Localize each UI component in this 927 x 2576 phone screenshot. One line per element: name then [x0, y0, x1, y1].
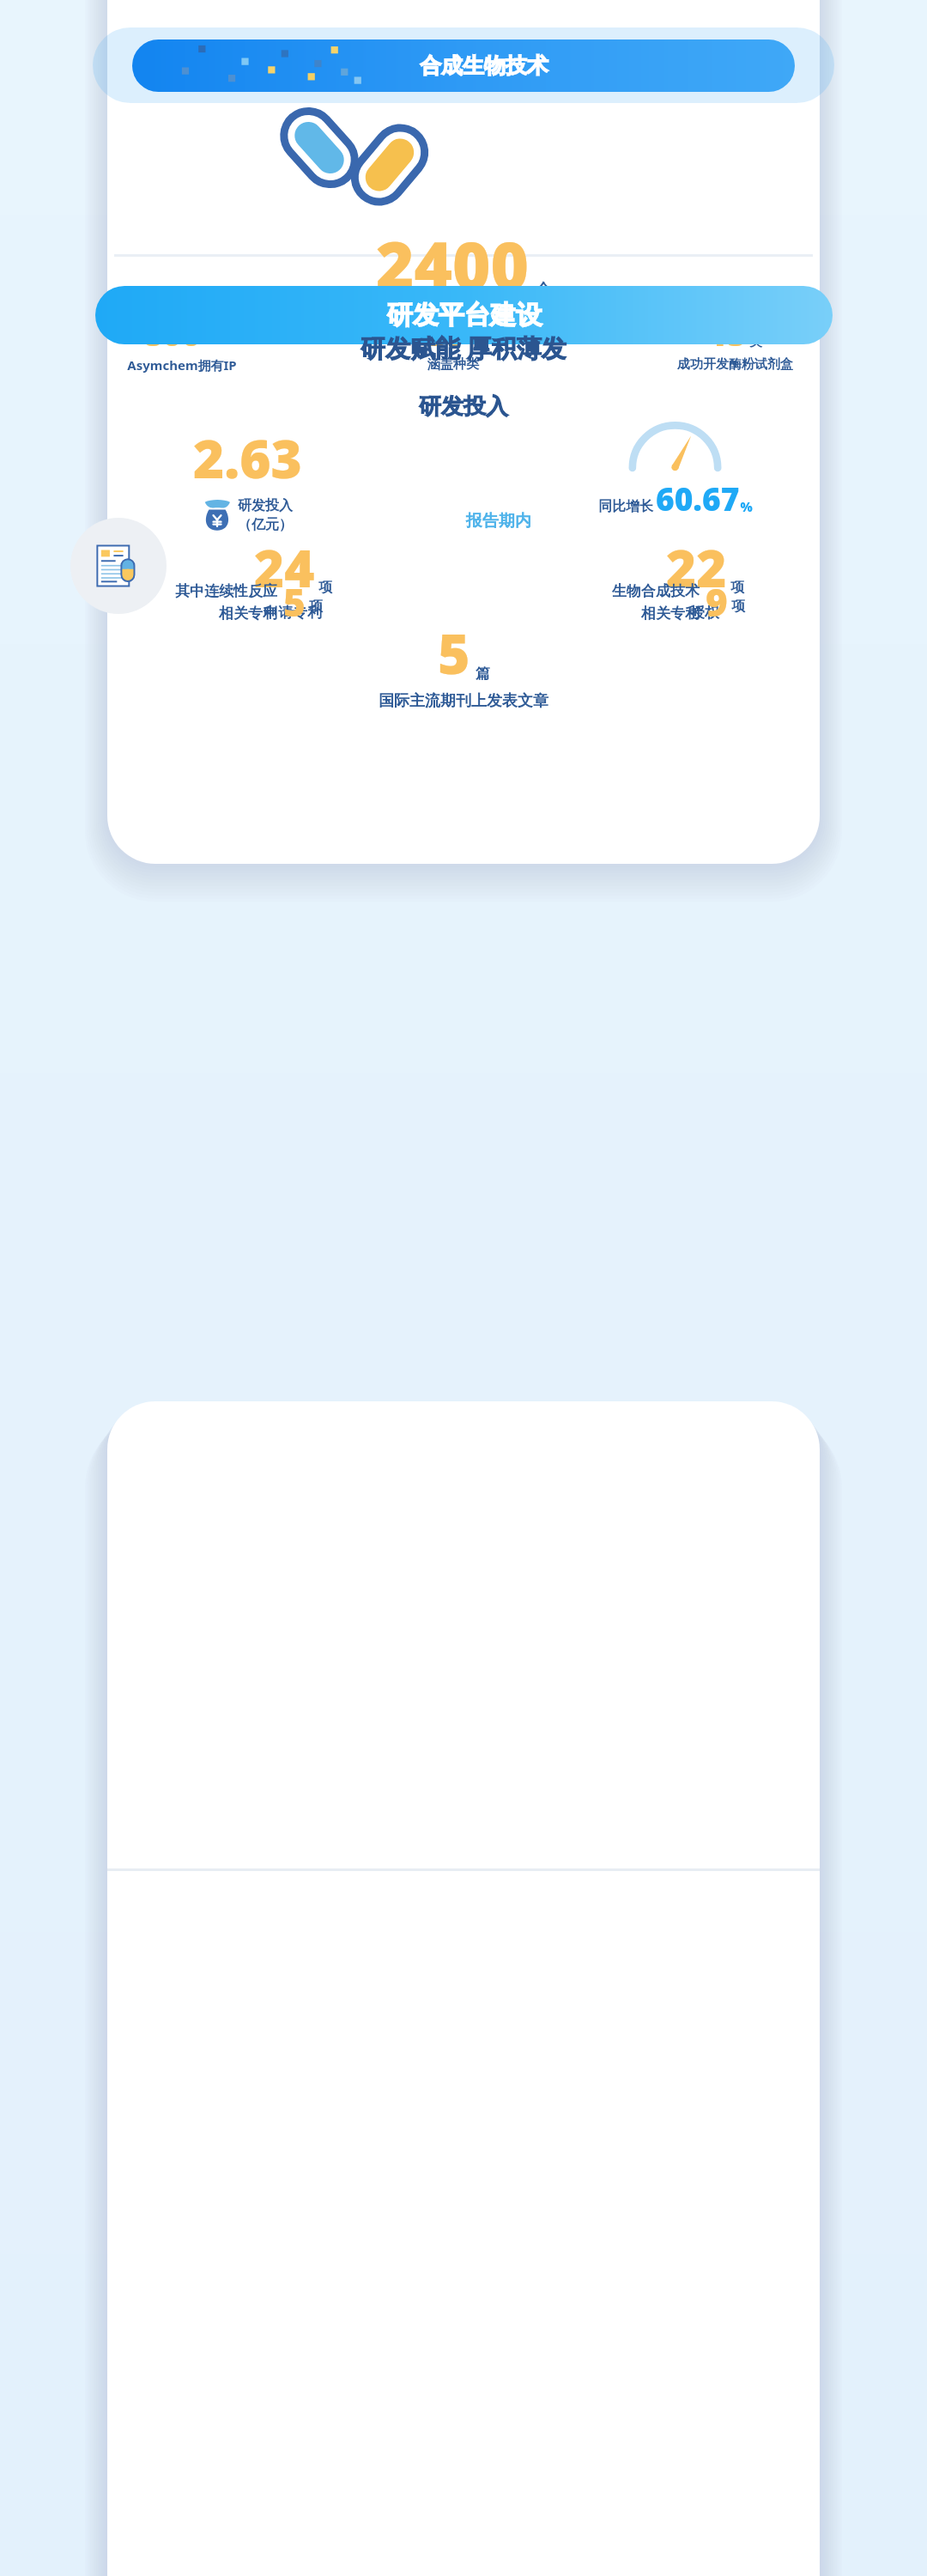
staticText: 研发投入 （亿元）: [238, 497, 293, 532]
staticText: 2400: [376, 220, 530, 309]
button[interactable]: 生物合成技术 相关专利: [463, 576, 893, 628]
staticText: 涵盖种类: [427, 356, 479, 373]
staticText: 已开发工程酶数量接近: [391, 312, 536, 330]
staticText: 个: [536, 280, 551, 300]
staticText: 项: [731, 598, 745, 615]
staticText: 研发平台建设: [387, 299, 542, 331]
staticText: 24: [254, 532, 315, 603]
staticText: %: [740, 498, 753, 515]
staticText: 项: [730, 579, 744, 596]
staticText: 9: [706, 576, 728, 628]
staticText: 5: [283, 576, 306, 628]
button[interactable]: 合成生物技术: [132, 39, 795, 92]
staticText: 5: [438, 616, 470, 690]
staticText: 15: [708, 311, 747, 355]
staticText: 篇: [476, 665, 490, 683]
staticText: Asymchem拥有IP: [127, 356, 237, 374]
other: Capsules: [0, 0, 927, 2576]
staticText: 同比增长: [598, 498, 653, 515]
staticText: 合成生物技术: [173, 52, 795, 79]
staticText: 800+: [143, 311, 221, 355]
button[interactable]: 20+: [334, 311, 573, 373]
staticText: 申请专利: [264, 604, 322, 622]
staticText: 报告期内: [466, 511, 531, 532]
staticText: 生物合成技术 相关专利: [612, 582, 700, 623]
button[interactable]: 其中连续性反应 相关专利: [34, 576, 463, 628]
button[interactable]: 15: [573, 311, 898, 373]
button[interactable]: 24: [96, 532, 489, 622]
staticText: 60.67: [656, 477, 740, 519]
staticText: 授权: [690, 604, 719, 622]
staticText: 20+: [425, 311, 482, 355]
button[interactable]: 800+: [29, 311, 334, 374]
staticText: 国际主流期刊上发表文章: [379, 691, 548, 711]
staticText: 其中连续性反应 相关专利: [175, 582, 277, 623]
staticText: 项: [309, 598, 323, 615]
staticText: 项: [318, 579, 332, 596]
staticText: 研发赋能 厚积薄发: [0, 331, 927, 365]
button[interactable]: 研发平台建设: [95, 286, 833, 344]
staticText: 类: [749, 334, 762, 350]
staticText: 研发投入: [0, 392, 927, 421]
staticText: 成功开发酶粉试剂盒: [677, 356, 793, 373]
staticText: 22: [666, 532, 727, 603]
button[interactable]: 22: [508, 532, 901, 622]
staticText: 2.63: [193, 422, 302, 494]
